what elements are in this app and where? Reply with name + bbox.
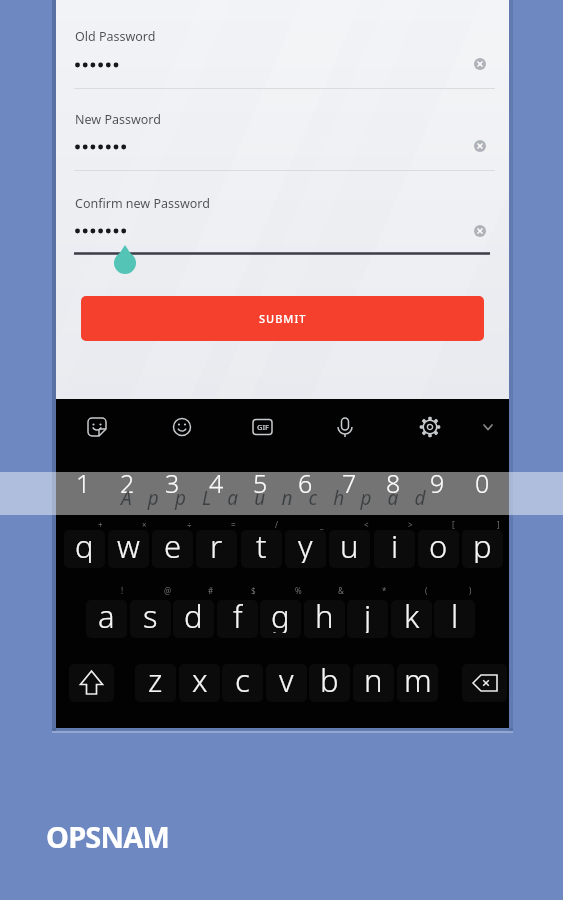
staticText: + <box>98 519 103 530</box>
button[interactable]: y <box>285 530 326 568</box>
button[interactable]: g <box>260 600 301 638</box>
button[interactable]: s <box>130 600 171 638</box>
button[interactable]: z <box>135 664 176 702</box>
button[interactable]: 7 <box>329 464 370 502</box>
button[interactable]: v <box>266 664 307 702</box>
button[interactable]: a <box>86 600 127 638</box>
staticText: 1 <box>76 466 91 500</box>
button[interactable]: m <box>397 664 438 702</box>
button[interactable]: 9 <box>417 464 458 502</box>
staticText: y <box>298 525 313 563</box>
staticText: ) <box>469 585 472 596</box>
staticText: z <box>148 659 163 697</box>
staticText: w <box>117 525 140 563</box>
button[interactable] <box>69 664 114 702</box>
staticText: 8 <box>386 466 401 500</box>
staticText: [ <box>452 519 455 530</box>
staticText: c <box>235 659 250 697</box>
staticText: q <box>75 525 94 563</box>
staticText: 0 <box>475 466 490 500</box>
button[interactable]: 3 <box>152 464 193 502</box>
button[interactable]: 0 <box>462 464 503 502</box>
staticText: e <box>164 525 182 563</box>
staticText: New Password <box>75 111 161 128</box>
staticText: m <box>404 659 432 697</box>
staticText: * <box>382 585 387 596</box>
staticText: s <box>143 595 158 633</box>
button[interactable]: d <box>173 600 214 638</box>
staticText: ! <box>121 585 124 596</box>
staticText: ÷ <box>187 519 192 530</box>
button[interactable]: c <box>222 664 263 702</box>
button[interactable]: 1 <box>63 464 104 502</box>
staticText: < <box>364 519 369 530</box>
button[interactable]: t <box>241 530 282 568</box>
staticText: 2 <box>120 466 135 500</box>
staticText: ] <box>497 519 500 530</box>
staticText: 9 <box>430 466 445 500</box>
staticText: A p p L a u n c h p a d <box>121 485 432 511</box>
staticText: $ <box>251 585 256 596</box>
staticText: & <box>338 585 344 596</box>
button[interactable]: q <box>64 530 105 568</box>
staticText: d <box>184 595 203 633</box>
staticText: 3 <box>165 466 180 500</box>
staticText: SUBMIT <box>259 311 307 326</box>
button[interactable]: 6 <box>285 464 326 502</box>
staticText: o <box>429 525 448 563</box>
staticText: 4 <box>209 466 224 500</box>
button[interactable]: x <box>179 664 220 702</box>
staticText: i <box>391 525 399 563</box>
staticText: t <box>256 525 267 563</box>
staticText: Confirm new Password <box>75 195 210 212</box>
button[interactable]: b <box>309 664 350 702</box>
staticText: 6 <box>298 466 313 500</box>
button[interactable]: n <box>353 664 394 702</box>
staticText: h <box>315 595 334 633</box>
button[interactable]: f <box>217 600 258 638</box>
staticText: n <box>364 659 383 697</box>
staticText: j <box>364 595 372 633</box>
staticText: > <box>408 519 413 530</box>
button[interactable]: p <box>462 530 503 568</box>
button[interactable]: u <box>329 530 370 568</box>
staticText: GIF <box>257 422 270 432</box>
staticText: 5 <box>253 466 268 500</box>
staticText: l <box>451 595 459 633</box>
staticText: × <box>142 519 147 530</box>
staticText: g <box>271 595 290 633</box>
staticText: _ <box>320 519 324 530</box>
staticText: / <box>275 519 278 530</box>
button[interactable]: SUBMIT <box>81 296 484 341</box>
staticText: % <box>295 585 302 596</box>
staticText: # <box>208 585 214 596</box>
button[interactable]: 5 <box>240 464 281 502</box>
button[interactable]: 2 <box>107 464 148 502</box>
staticText: a <box>98 595 115 633</box>
button[interactable]: k <box>391 600 432 638</box>
button[interactable]: e <box>152 530 193 568</box>
button[interactable]: 4 <box>196 464 237 502</box>
button[interactable]: h <box>304 600 345 638</box>
button[interactable]: l <box>434 600 475 638</box>
staticText: u <box>340 525 359 563</box>
staticText: f <box>233 595 243 633</box>
staticText: p <box>473 525 492 563</box>
staticText: v <box>279 659 294 697</box>
button[interactable]: w <box>108 530 149 568</box>
staticText: r <box>210 525 223 563</box>
staticText: = <box>231 519 236 530</box>
button[interactable] <box>462 664 507 702</box>
staticText: 7 <box>342 466 357 500</box>
staticText: b <box>320 659 339 697</box>
button[interactable]: j <box>347 600 388 638</box>
staticText: @ <box>164 585 172 596</box>
button[interactable]: i <box>374 530 415 568</box>
staticText: Old Password <box>75 28 156 45</box>
button[interactable]: 8 <box>373 464 414 502</box>
staticText: k <box>404 595 420 633</box>
staticText: OPSNAM <box>46 817 170 856</box>
button[interactable]: r <box>196 530 237 568</box>
button[interactable]: o <box>418 530 459 568</box>
staticText: x <box>192 659 208 697</box>
